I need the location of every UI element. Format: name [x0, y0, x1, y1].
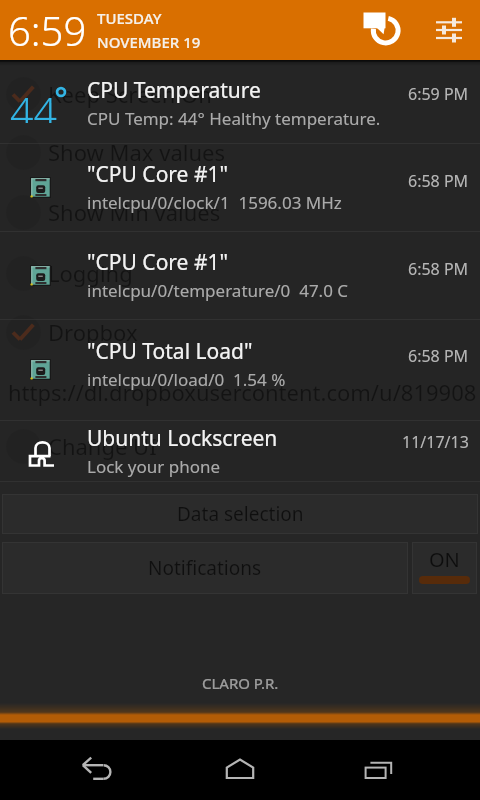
button[interactable]: Show Max values — [0, 131, 480, 173]
staticText: Change UI — [48, 431, 157, 461]
staticText: 6:58 PM — [408, 345, 469, 367]
staticText: "CPU Core #1" — [87, 160, 229, 189]
button[interactable]: 44 — [0, 62, 480, 143]
button[interactable]: Ubuntu Lockscreen — [0, 420, 480, 481]
staticText: 6:59 — [8, 3, 87, 57]
button[interactable]: "CPU Core #1" — [0, 231, 480, 319]
staticText: Logging — [48, 258, 133, 288]
button[interactable]: "CPU Core #1" — [0, 143, 480, 231]
button[interactable]: Change UI — [0, 425, 480, 467]
button[interactable]: Recent apps — [340, 740, 420, 800]
button[interactable]: "CPU Total Load" — [0, 319, 480, 420]
staticText: Data selection — [177, 501, 304, 527]
staticText: NOVEMBER 19 — [97, 32, 201, 52]
button[interactable]: Data selection — [2, 494, 478, 534]
staticText: https://dl.dropboxusercontent.com/u/8199… — [8, 377, 477, 407]
staticText: Lock your phone — [87, 455, 221, 478]
staticText: 6:58 PM — [408, 170, 469, 192]
staticText: Show Min values — [48, 197, 221, 227]
button[interactable]: Back — [60, 740, 140, 800]
staticText: intelcpu/0/temperature/0 47.0 C — [87, 279, 349, 302]
button[interactable]: Keep Screen On — [0, 73, 480, 115]
staticText: TUESDAY — [97, 8, 162, 28]
staticText: CLARO P.R. — [202, 673, 279, 693]
button[interactable]: Show Min values — [0, 191, 480, 233]
button[interactable]: Quick settings — [418, 0, 480, 60]
button[interactable]: ON — [412, 542, 477, 594]
staticText: Ubuntu Lockscreen — [87, 424, 278, 453]
staticText: "CPU Core #1" — [87, 248, 229, 277]
staticText: Notifications — [148, 555, 262, 581]
staticText: ON — [429, 546, 460, 573]
staticText: intelcpu/0/clock/1 1596.03 MHz — [87, 191, 342, 214]
button[interactable]: Notifications — [2, 542, 408, 594]
staticText: intelcpu/0/load/0 1.54 % — [87, 368, 286, 391]
staticText: 11/17/13 — [402, 431, 469, 453]
button[interactable]: Home — [200, 740, 280, 800]
button[interactable]: Clear all notifications — [362, 0, 418, 60]
staticText: CPU Temp: 44° Healthy temperature. — [87, 107, 381, 130]
staticText: 6:59 PM — [408, 83, 469, 105]
staticText: 44 — [10, 83, 57, 123]
staticText: Show Max values — [48, 137, 225, 167]
staticText: 6:58 PM — [408, 258, 469, 280]
staticText: Keep Screen On — [48, 79, 212, 109]
staticText: CPU Temperature — [87, 76, 261, 105]
staticText: "CPU Total Load" — [87, 337, 253, 366]
button[interactable]: Dropbox — [0, 311, 480, 353]
staticText: Dropbox — [48, 317, 138, 347]
button[interactable]: Logging — [0, 252, 480, 294]
